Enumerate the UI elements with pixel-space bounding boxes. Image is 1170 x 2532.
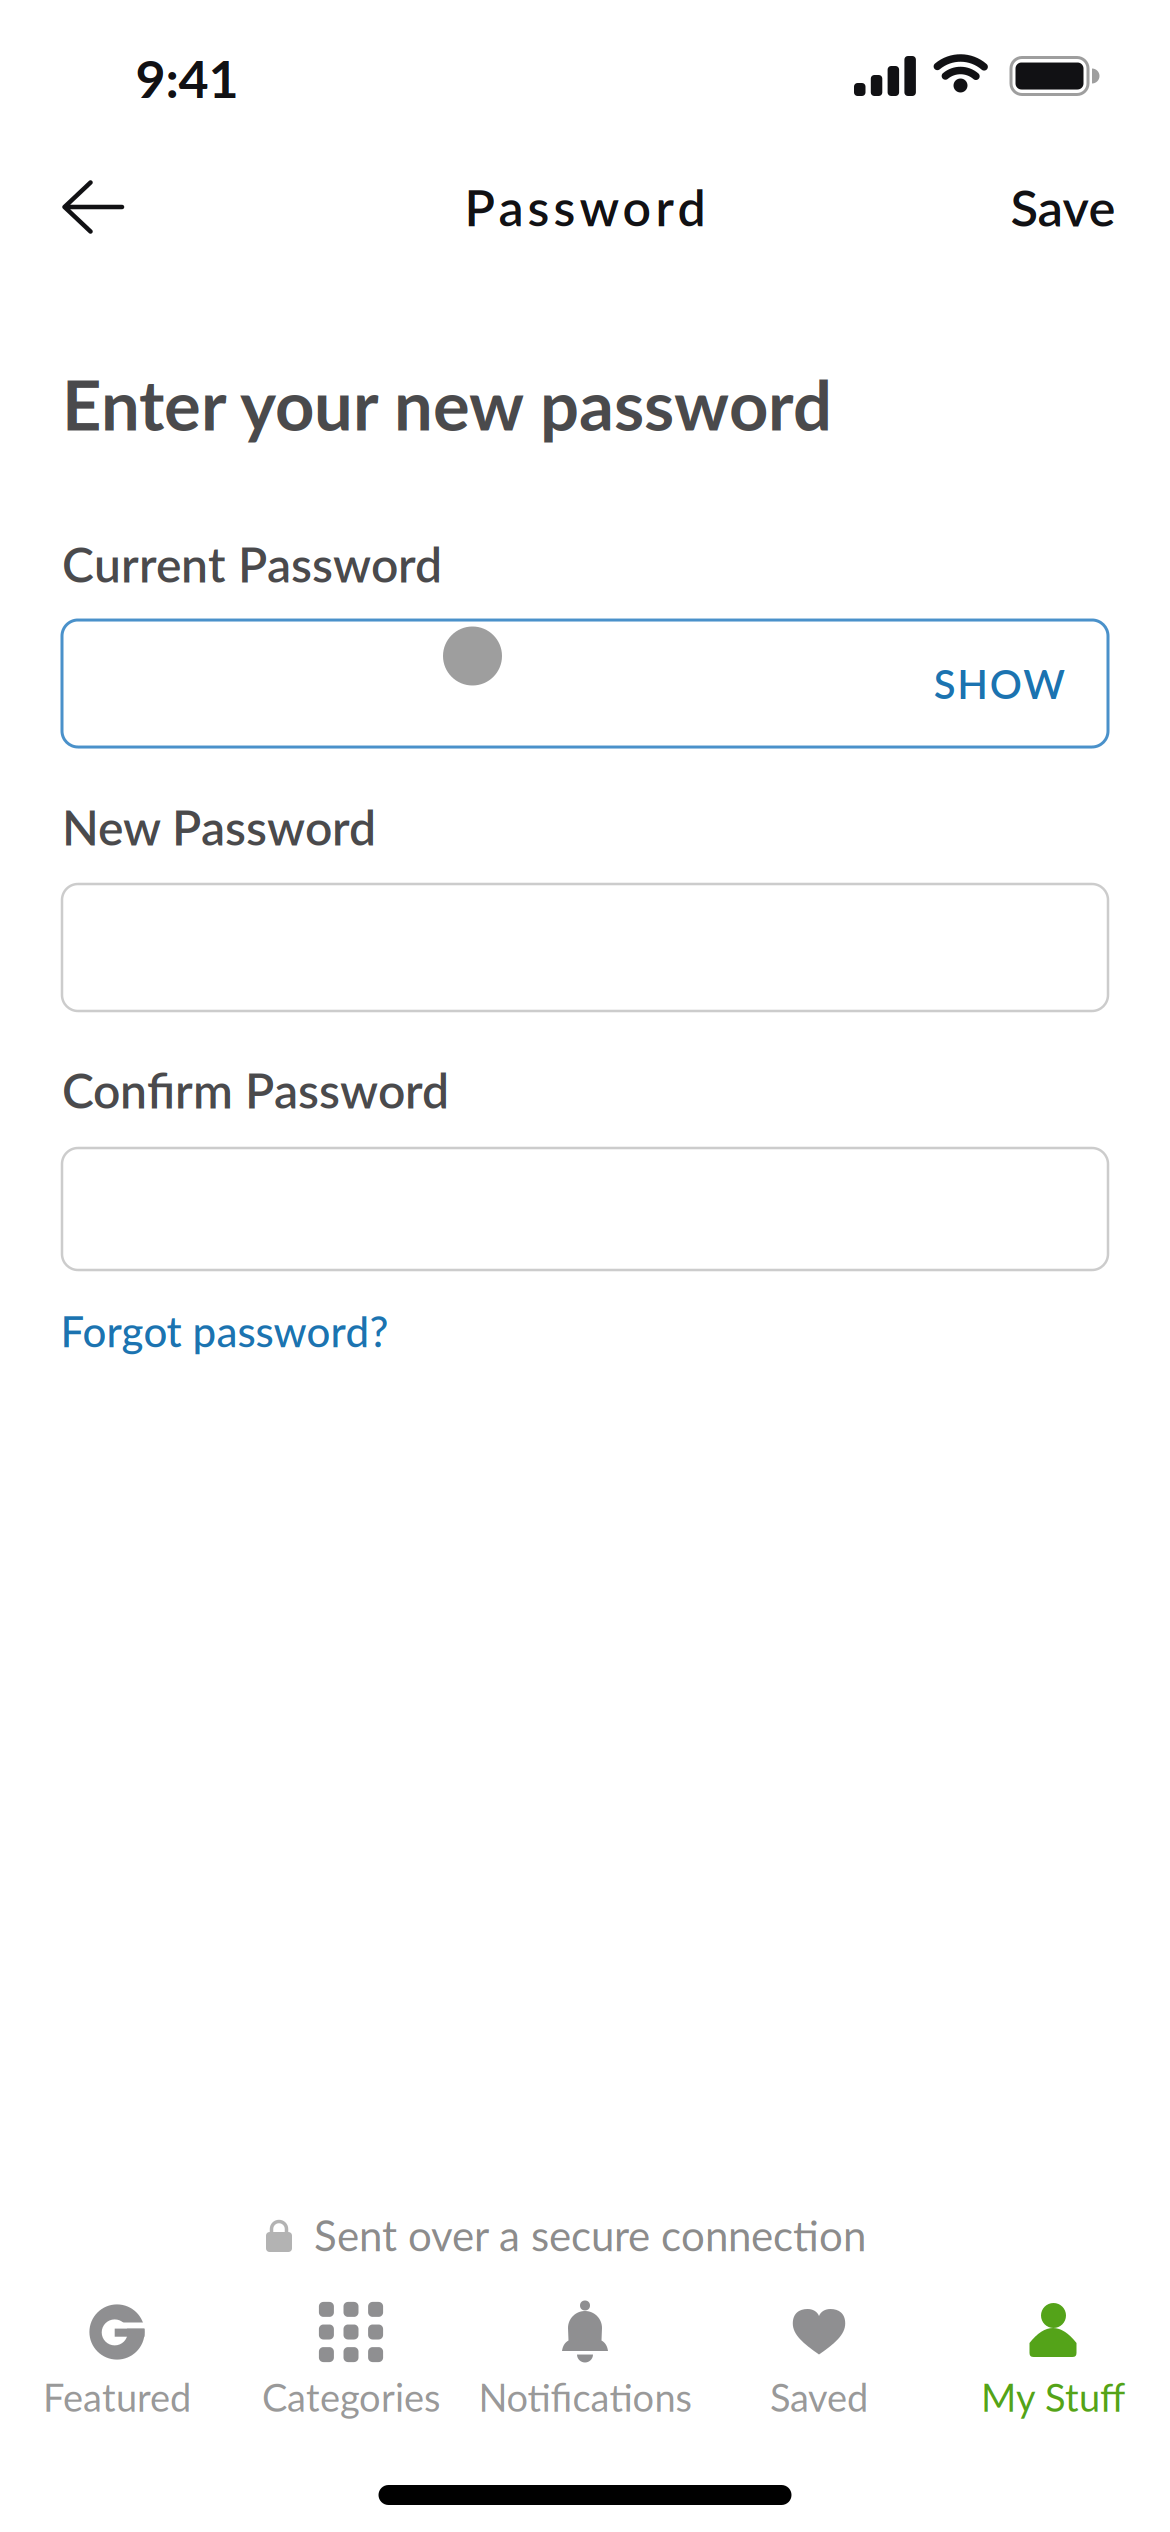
button[interactable]: SHOW: [919, 620, 1079, 746]
staticText: Forgot password?: [60, 1306, 388, 1356]
button[interactable]: Forgot password?: [60, 1306, 388, 1356]
button[interactable]: Featured: [0, 2282, 234, 2422]
staticText: Enter your new password: [62, 363, 832, 445]
staticText: Sent over a secure connection: [314, 2210, 866, 2260]
staticText: My Stuff: [981, 2374, 1125, 2420]
button[interactable]: Categories: [234, 2282, 468, 2422]
staticText: Confirm Password: [62, 1061, 449, 1119]
staticText: New Password: [62, 798, 376, 856]
staticText: Categories: [262, 2374, 440, 2420]
staticText: SHOW: [934, 659, 1065, 707]
button[interactable]: Back: [48, 167, 138, 247]
button[interactable]: Notifications: [468, 2282, 702, 2422]
staticText: 9:41: [135, 47, 238, 109]
staticText: Current Password: [62, 535, 442, 593]
staticText: Featured: [43, 2374, 191, 2420]
staticText: Saved: [770, 2374, 868, 2420]
staticText: Save: [1010, 177, 1115, 237]
staticText: Notifications: [478, 2374, 691, 2420]
button[interactable]: Save: [988, 167, 1138, 247]
button[interactable]: My Stuff: [936, 2282, 1170, 2422]
staticText: Password: [464, 177, 705, 237]
button[interactable]: Saved: [702, 2282, 936, 2422]
